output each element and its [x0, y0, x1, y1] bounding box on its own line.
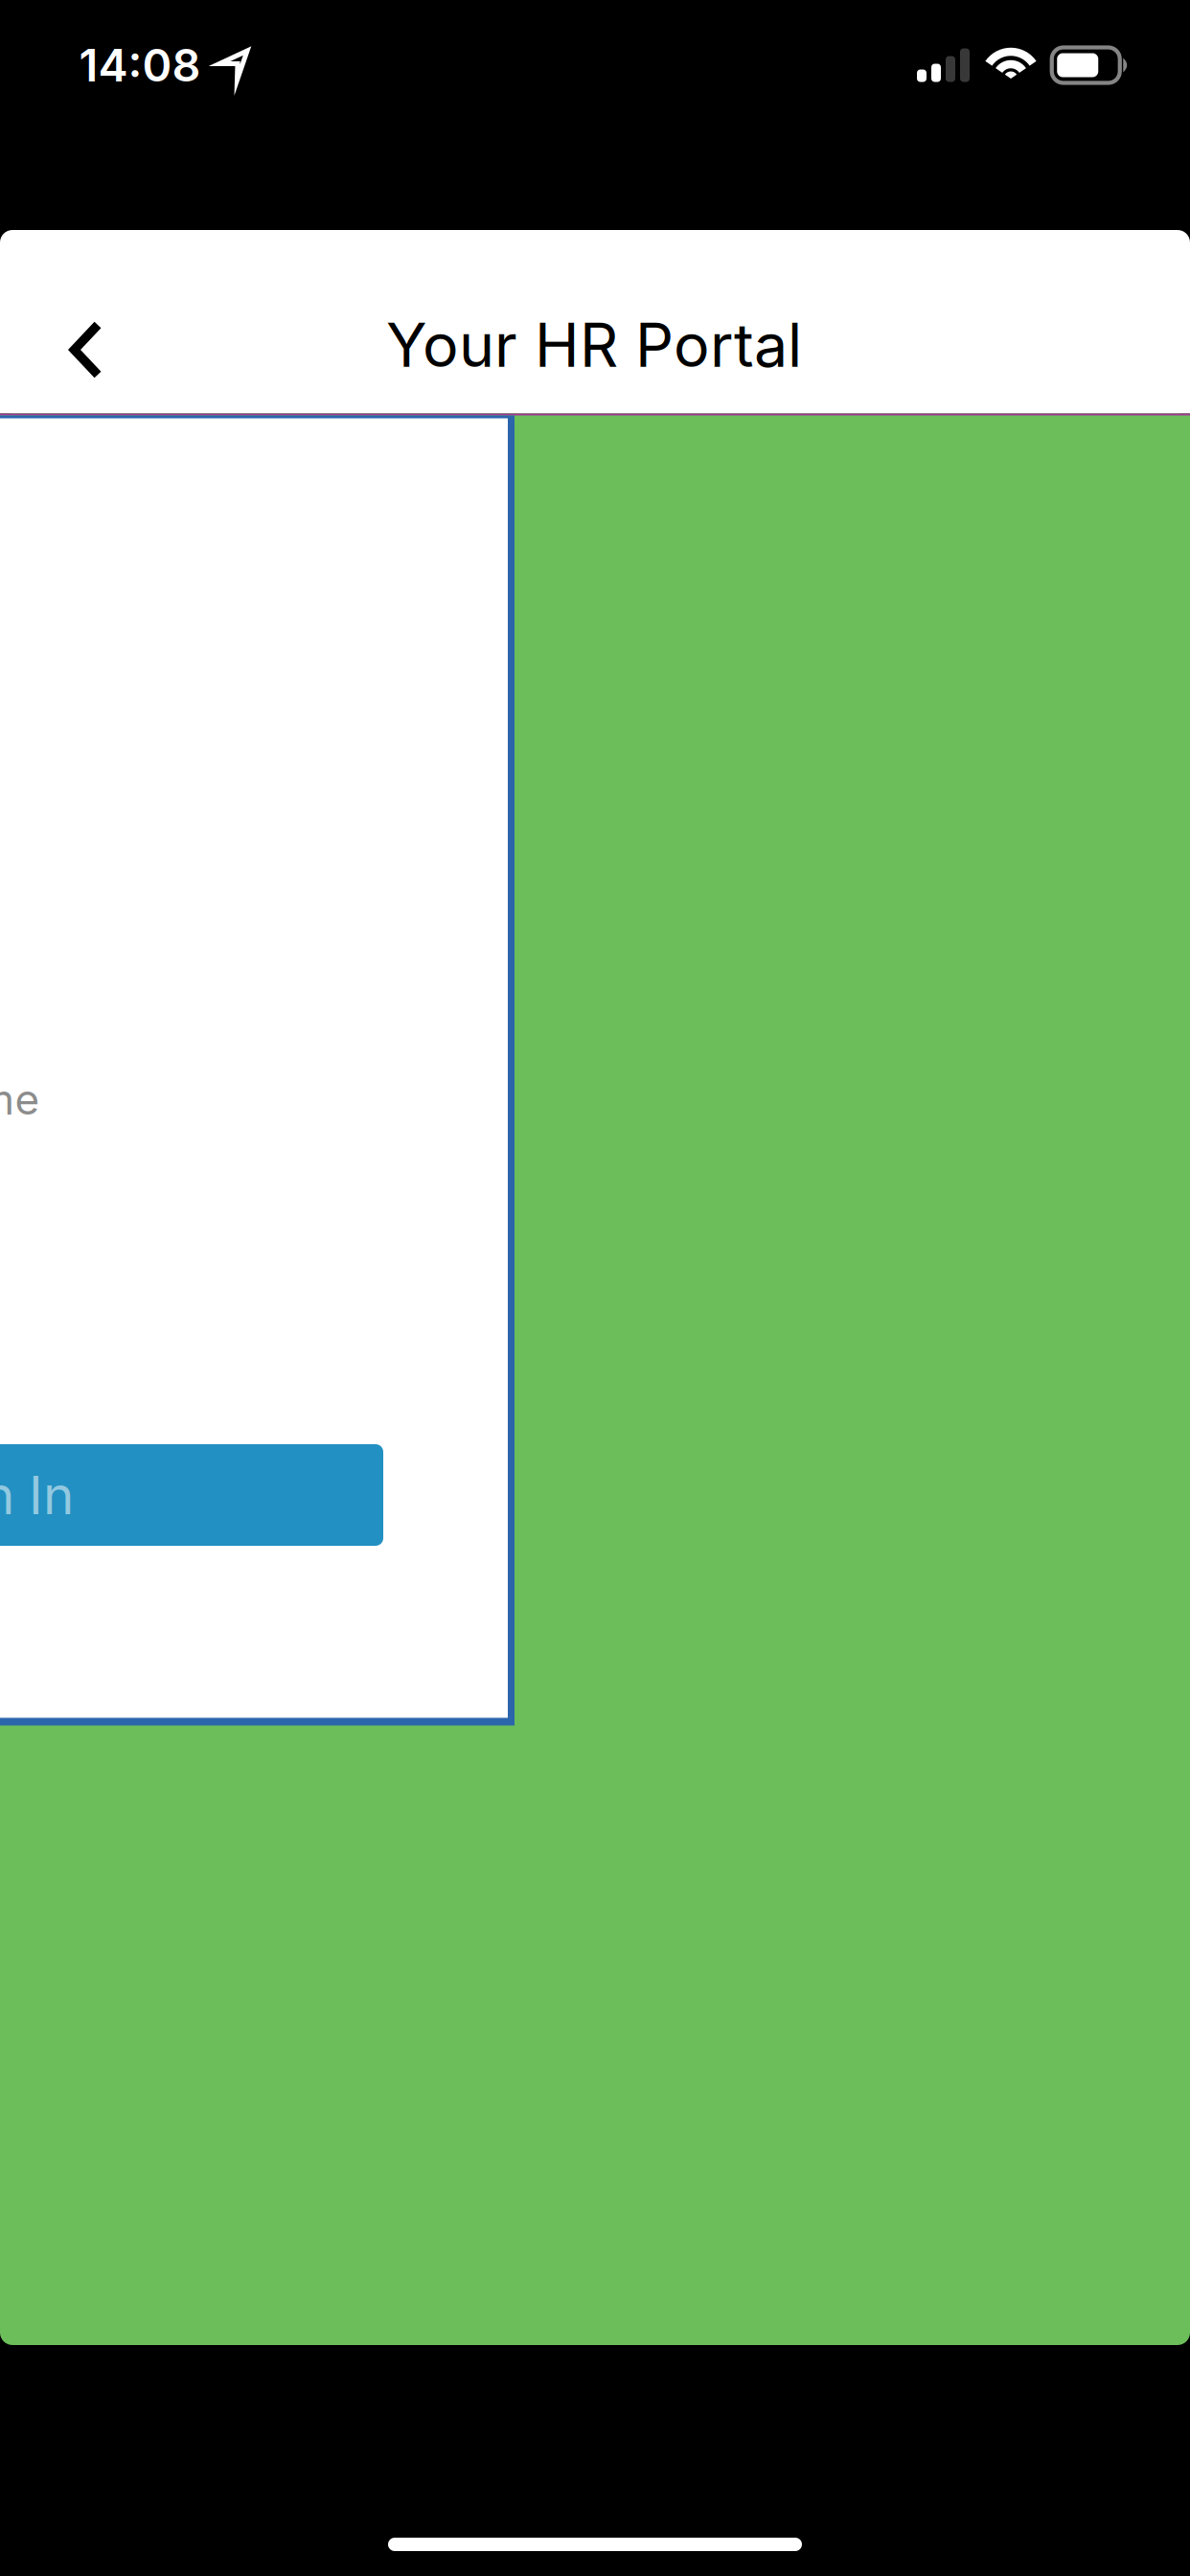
staticText: Username — [0, 1074, 40, 1125]
staticText: Sign In — [0, 1463, 74, 1527]
button[interactable]: Sign In — [0, 1444, 383, 1546]
staticText: Your HR Portal — [386, 309, 802, 381]
button[interactable]: Back — [24, 283, 149, 417]
staticText: 14:08 — [79, 38, 201, 92]
